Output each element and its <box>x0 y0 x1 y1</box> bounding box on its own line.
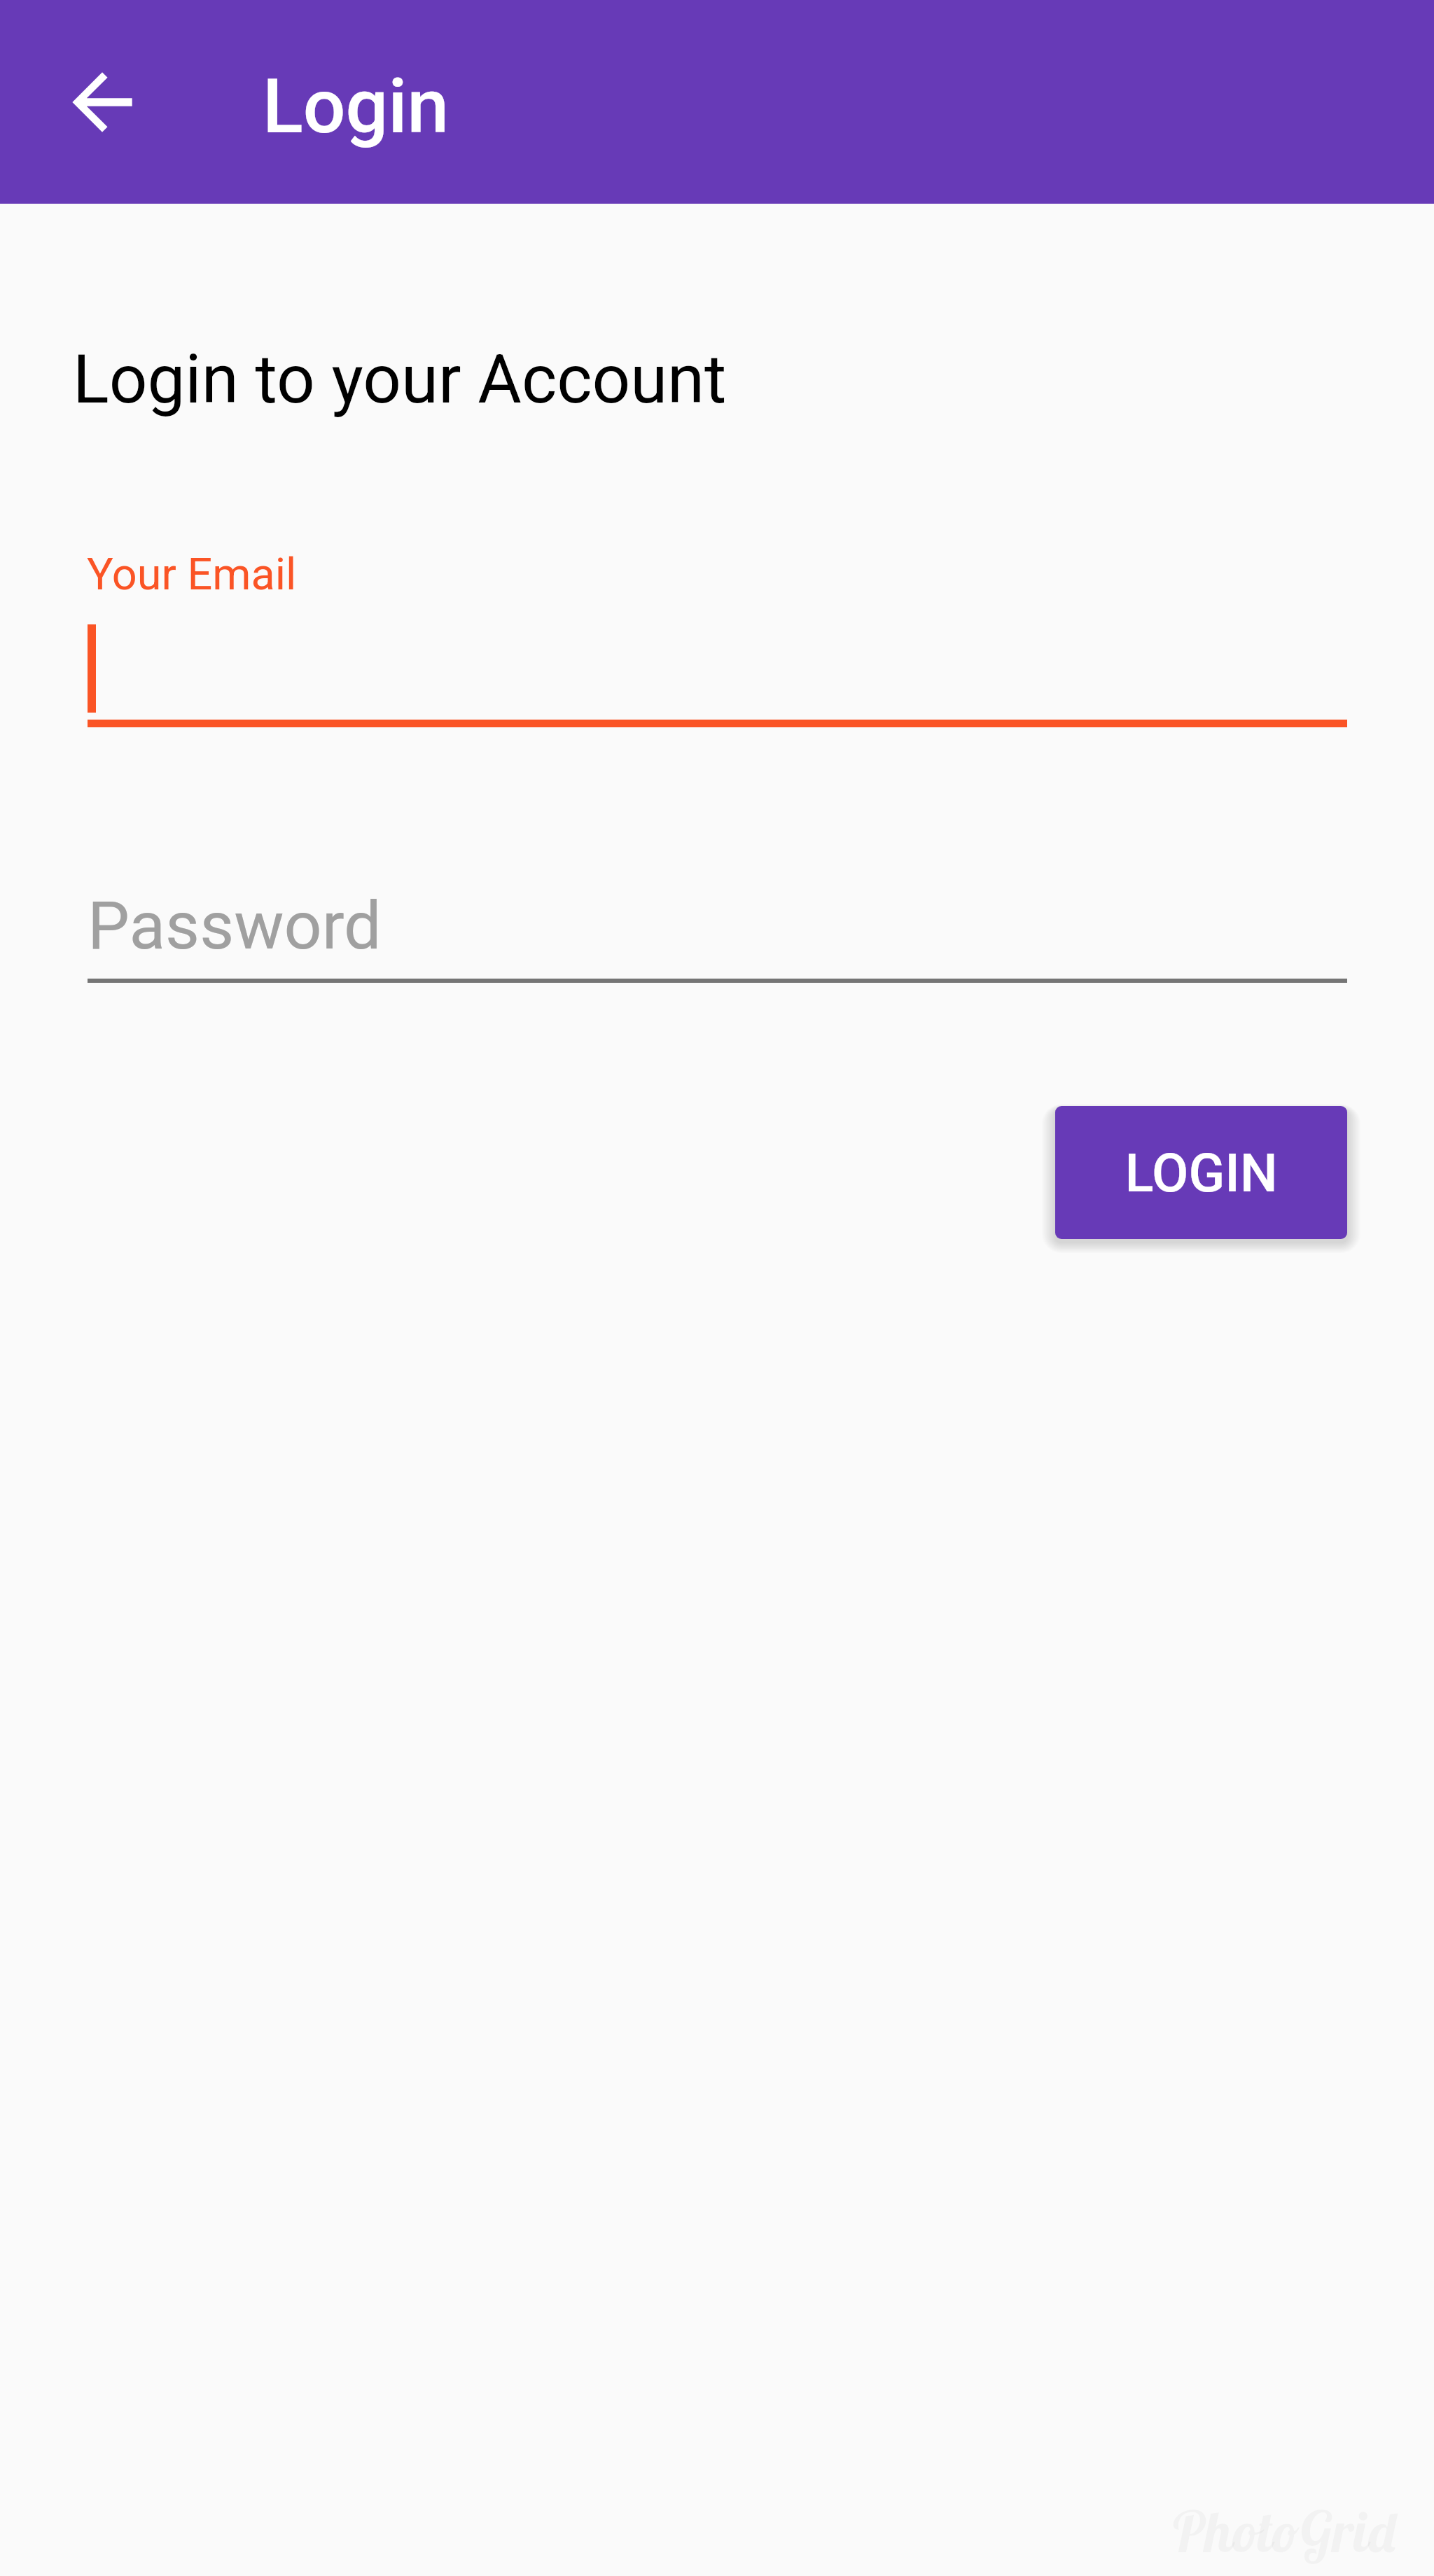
staticText: PhotoGrid <box>1170 2496 1398 2566</box>
button[interactable]: Password <box>88 885 1347 983</box>
staticText: Your Email <box>87 549 297 601</box>
button[interactable] <box>88 616 1347 727</box>
button[interactable]: Back <box>57 57 147 147</box>
button[interactable]: LOGIN <box>1055 1106 1347 1239</box>
staticText: Login <box>263 63 449 150</box>
staticText: LOGIN <box>1125 1142 1278 1204</box>
staticText: Login to your Account <box>73 340 727 419</box>
staticText: Password <box>88 887 382 965</box>
